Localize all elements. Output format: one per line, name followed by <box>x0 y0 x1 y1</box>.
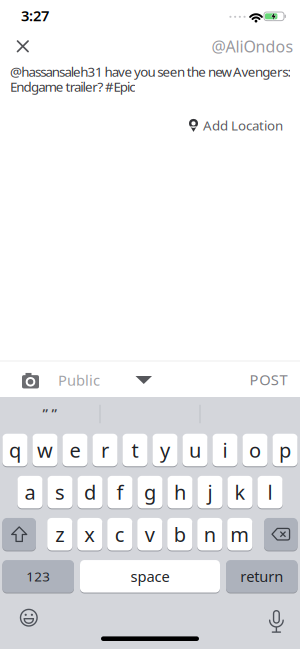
button[interactable]: Delete <box>264 517 298 551</box>
button[interactable]: r <box>92 433 118 467</box>
staticText: @hassansaleh31 have you seen the new Ave… <box>10 63 291 80</box>
staticText: r <box>101 437 109 463</box>
staticText: Public <box>58 370 100 390</box>
button[interactable]: Add Photo <box>16 367 45 394</box>
button[interactable]: a <box>17 475 43 509</box>
button[interactable]: y <box>152 433 178 467</box>
staticText: j <box>207 479 212 505</box>
staticText: n <box>204 521 216 547</box>
staticText: z <box>55 521 64 547</box>
button[interactable]: return <box>226 559 298 593</box>
button[interactable]: Close <box>12 35 34 57</box>
button[interactable]: w <box>32 433 58 467</box>
staticText: g <box>144 479 156 505</box>
button[interactable]: o <box>242 433 268 467</box>
staticText: e <box>69 437 80 463</box>
staticText: return <box>240 567 283 586</box>
button[interactable]: n <box>197 517 222 551</box>
staticText: o <box>249 437 261 463</box>
button[interactable]: u <box>182 433 208 467</box>
staticText: q <box>9 437 21 463</box>
button[interactable]: Emoji <box>15 604 42 631</box>
button[interactable]: t <box>122 433 148 467</box>
staticText: ” ” <box>42 404 57 422</box>
staticText: k <box>234 479 245 505</box>
staticText: y <box>160 437 170 463</box>
button[interactable]: Add Location <box>173 112 283 138</box>
button[interactable]: f <box>107 475 133 509</box>
staticText: w <box>37 437 53 463</box>
button[interactable]: ” ” <box>2 398 98 427</box>
staticText: m <box>230 521 249 547</box>
button[interactable]: x <box>77 517 102 551</box>
button[interactable]: e <box>62 433 88 467</box>
button[interactable]: space <box>80 559 220 593</box>
button[interactable]: 123 <box>2 559 74 593</box>
staticText: b <box>174 521 186 547</box>
staticText: i <box>222 437 227 463</box>
staticText: c <box>115 521 125 547</box>
staticText: h <box>174 479 186 505</box>
button[interactable]: Public <box>58 362 152 398</box>
button[interactable]: v <box>137 517 162 551</box>
button[interactable]: h <box>167 475 193 509</box>
staticText: p <box>279 437 291 463</box>
staticText: l <box>267 479 272 505</box>
button[interactable]: POST <box>246 362 291 397</box>
staticText: u <box>189 437 201 463</box>
staticText: Endgame trailer? #Epic <box>10 78 135 95</box>
staticText: a <box>24 479 35 505</box>
staticText: Add Location <box>203 116 283 134</box>
button[interactable]: Shift <box>2 517 36 551</box>
staticText: space <box>130 567 169 586</box>
staticText: x <box>84 521 95 547</box>
button[interactable]: l <box>257 475 283 509</box>
staticText: @AliOndos <box>211 36 293 57</box>
button[interactable]: Dictation <box>265 606 288 638</box>
button[interactable]: @AliOndos <box>211 36 293 57</box>
button[interactable]: g <box>137 475 163 509</box>
button[interactable]: s <box>47 475 73 509</box>
staticText: 3:27 <box>21 6 49 25</box>
staticText: v <box>145 521 155 547</box>
button[interactable]: p <box>272 433 298 467</box>
staticText: d <box>84 479 96 505</box>
button[interactable]: q <box>2 433 28 467</box>
button[interactable]: c <box>107 517 132 551</box>
staticText: 123 <box>26 567 50 585</box>
button[interactable]: k <box>227 475 253 509</box>
staticText: POST <box>250 370 287 389</box>
button[interactable]: j <box>197 475 223 509</box>
staticText: s <box>55 479 65 505</box>
button[interactable]: m <box>227 517 252 551</box>
staticText: f <box>116 479 123 505</box>
button[interactable]: i <box>212 433 238 467</box>
button[interactable]: b <box>167 517 192 551</box>
button[interactable]: z <box>47 517 72 551</box>
staticText: t <box>131 437 138 463</box>
button[interactable]: d <box>77 475 103 509</box>
